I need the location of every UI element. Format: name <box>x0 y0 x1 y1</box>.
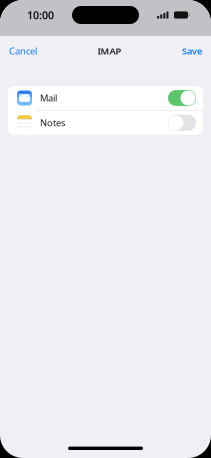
staticText: Save <box>182 45 202 57</box>
staticText: Mail <box>40 92 57 104</box>
button[interactable]: Cancel <box>0 41 46 61</box>
staticText: Cancel <box>9 45 37 57</box>
button[interactable]: Save <box>173 41 211 61</box>
staticText: 10:00 <box>27 8 54 22</box>
staticText: Notes <box>40 116 65 129</box>
button[interactable]: Notes <box>8 111 203 135</box>
staticText: IMAP <box>97 45 121 57</box>
button[interactable]: Mail <box>8 86 203 110</box>
